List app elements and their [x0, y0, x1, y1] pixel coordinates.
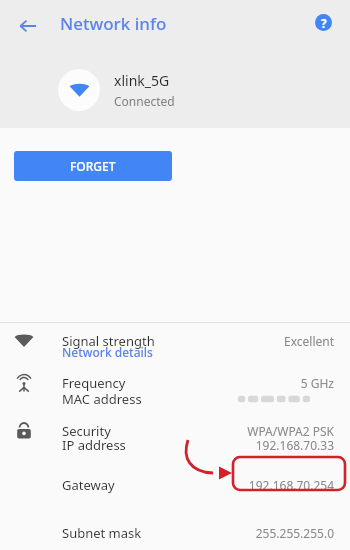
button[interactable]: Security [0, 414, 350, 448]
staticText: FORGET [70, 158, 116, 174]
button[interactable]: Frequency [0, 366, 350, 400]
staticText: 192.168.70.33 [255, 437, 334, 453]
button[interactable]: Gateway [0, 468, 350, 502]
button[interactable]: Back [10, 8, 46, 44]
staticText: WPA/WPA2 PSK [247, 423, 334, 439]
staticText: Frequency [62, 374, 126, 392]
button[interactable]: FORGET [14, 151, 172, 181]
staticText: 255.255.255.0 [255, 525, 334, 541]
staticText: Connected [114, 93, 175, 109]
staticText: IP address [62, 436, 126, 454]
staticText: Network info [60, 12, 167, 35]
staticText: 192.168.70.254 [248, 477, 334, 493]
staticText: Gateway [62, 476, 115, 494]
staticText: Signal strength [62, 332, 155, 350]
button[interactable]: Subnet mask [0, 516, 350, 550]
button[interactable]: IP address [0, 428, 350, 462]
staticText: ? [321, 15, 327, 31]
button[interactable]: MAC address [0, 382, 350, 416]
staticText: MAC address [62, 390, 142, 408]
staticText: 5 GHz [300, 375, 334, 391]
staticText: Excellent [283, 333, 334, 349]
staticText: Security [62, 422, 111, 440]
staticText: Subnet mask [62, 524, 142, 542]
button[interactable]: Signal strength [0, 324, 350, 358]
staticText: xlink_5G [114, 71, 170, 90]
button[interactable]: Help [310, 9, 336, 35]
staticText: Network details [62, 344, 153, 360]
